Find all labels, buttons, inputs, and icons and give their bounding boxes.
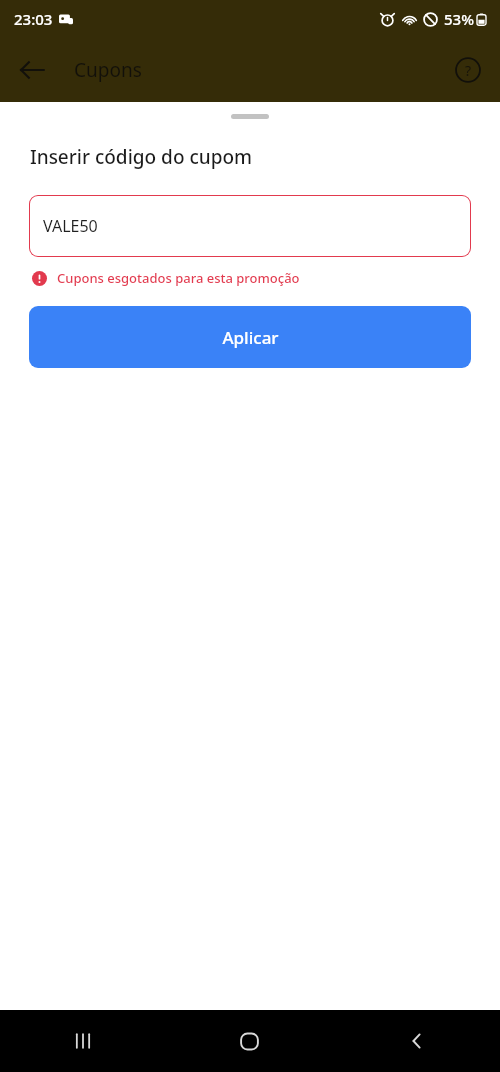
staticText: 23:03 (14, 9, 53, 29)
staticText: 53% (444, 9, 474, 29)
button[interactable]: Aplicar (29, 306, 471, 368)
button[interactable]: VALE50 (29, 195, 471, 257)
button[interactable]: Home (166, 1010, 333, 1072)
button[interactable]: Recent apps (0, 1010, 166, 1072)
staticText: Cupons (74, 57, 142, 83)
staticText: VALE50 (43, 215, 98, 237)
staticText: Cupons esgotados para esta promoção (57, 269, 300, 287)
staticText: Aplicar (222, 326, 279, 349)
button[interactable]: Back (333, 1010, 500, 1072)
staticText: ? (465, 61, 472, 80)
staticText: Inserir código do cupom (30, 144, 253, 170)
button[interactable]: Help (446, 48, 490, 92)
button[interactable]: Back (8, 46, 56, 94)
